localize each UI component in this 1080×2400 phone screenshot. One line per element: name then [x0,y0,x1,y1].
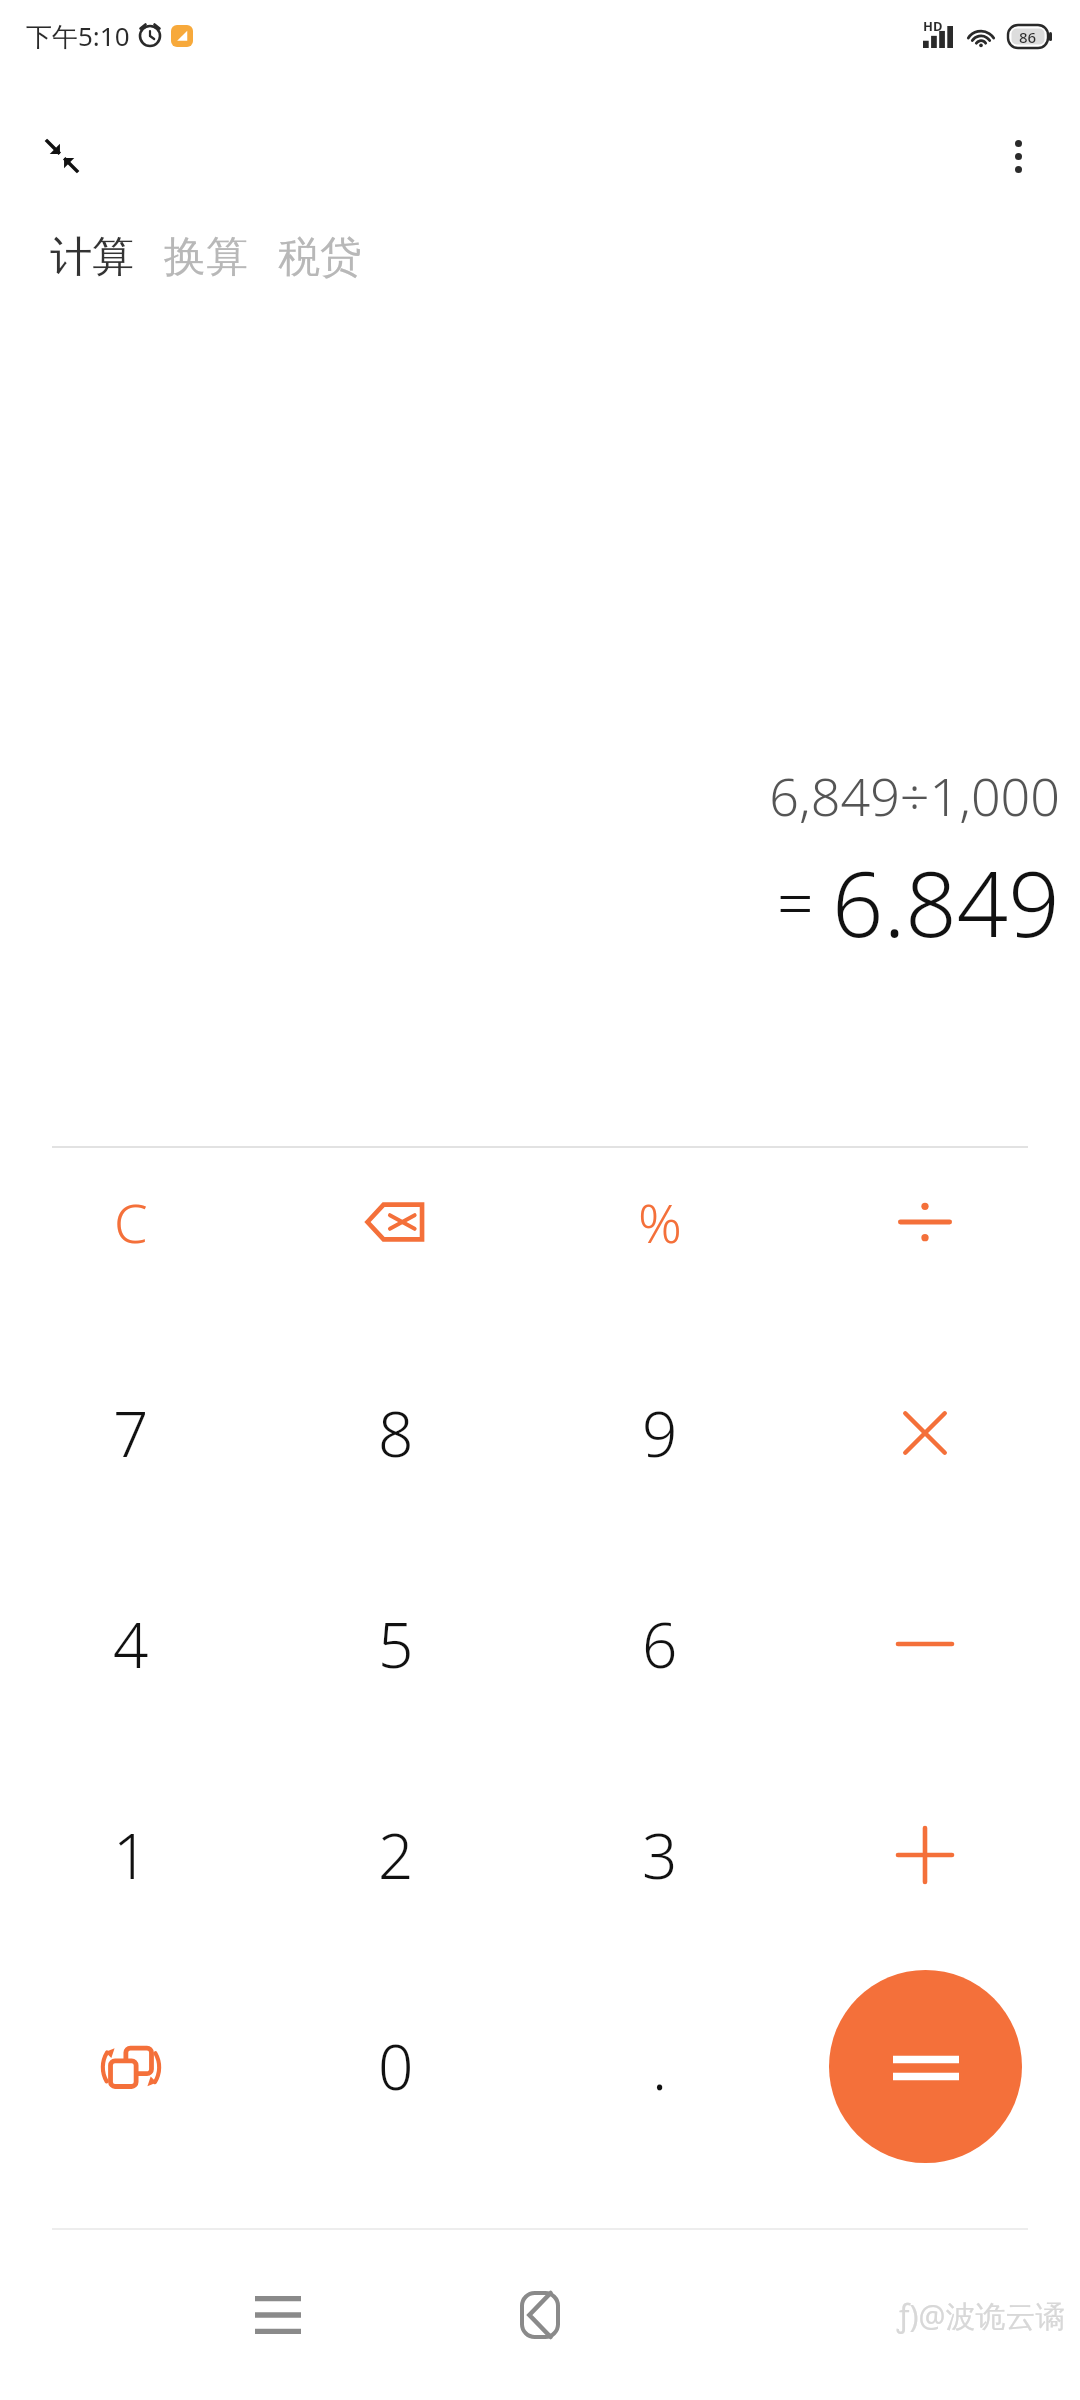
button[interactable]: Unit conversion [31,1976,231,2156]
staticText: HD [923,17,943,35]
other: Backspace [365,1191,427,1253]
other: Multiply [899,1407,951,1459]
staticText: 0 [378,2024,414,2108]
staticText: 9 [642,1391,678,1475]
staticText: . [652,2024,668,2108]
button[interactable]: 8 [296,1343,496,1523]
button[interactable]: 2 [296,1765,496,1945]
button[interactable]: Percent [560,1132,760,1312]
staticText: 换算 [164,231,248,284]
button[interactable]: Home [490,2265,590,2365]
button[interactable]: 5 [296,1554,496,1734]
button[interactable]: 1 [31,1765,231,1945]
button[interactable]: More options [982,120,1054,192]
other: Plus [898,1828,952,1882]
other: Minus [898,1633,952,1655]
staticText: 6,849÷1,000 [769,760,1060,831]
staticText: 7 [113,1391,149,1475]
button[interactable]: Collapse [26,120,98,192]
staticText: 2 [378,1813,414,1897]
button[interactable]: 4 [31,1554,231,1734]
staticText: 4 [113,1602,149,1686]
button[interactable]: 6 [560,1554,760,1734]
staticText: 6 [642,1602,678,1686]
staticText: 计算 [50,231,134,284]
staticText: 税贷 [278,231,362,284]
button[interactable]: 0 [296,1976,496,2156]
button[interactable]: Clear [31,1132,231,1312]
staticText: 下午5:10 [26,18,130,54]
staticText: 6.849 [832,841,1060,964]
staticText: 1 [113,1813,149,1897]
staticText: 5 [378,1602,414,1686]
staticText: 86 [1019,27,1037,47]
other: Divide [897,1194,953,1250]
button[interactable]: 3 [560,1765,760,1945]
button[interactable]: 7 [31,1343,231,1523]
button[interactable]: Plus [825,1765,1025,1945]
button[interactable]: Back [490,2265,590,2365]
button[interactable]: 税贷 [272,225,368,290]
staticText: 8 [378,1391,414,1475]
staticText: % [638,1185,682,1259]
staticText: ƒ)@波诡云谲 [897,2295,1066,2336]
button[interactable]: 计算 [44,225,140,290]
button[interactable]: Equals [829,1970,1022,2163]
button[interactable]: Recent apps [228,2265,328,2365]
button[interactable]: Backspace [296,1132,496,1312]
staticText: 3 [642,1813,678,1897]
staticText: = [777,859,814,946]
staticText: C [114,1185,148,1259]
other: Unit conversion [99,2034,163,2098]
button[interactable]: Divide [825,1132,1025,1312]
button[interactable]: 9 [560,1343,760,1523]
button[interactable]: 换算 [158,225,254,290]
button[interactable]: Decimal point [560,1976,760,2156]
button[interactable]: Minus [825,1554,1025,1734]
button[interactable]: Multiply [825,1343,1025,1523]
